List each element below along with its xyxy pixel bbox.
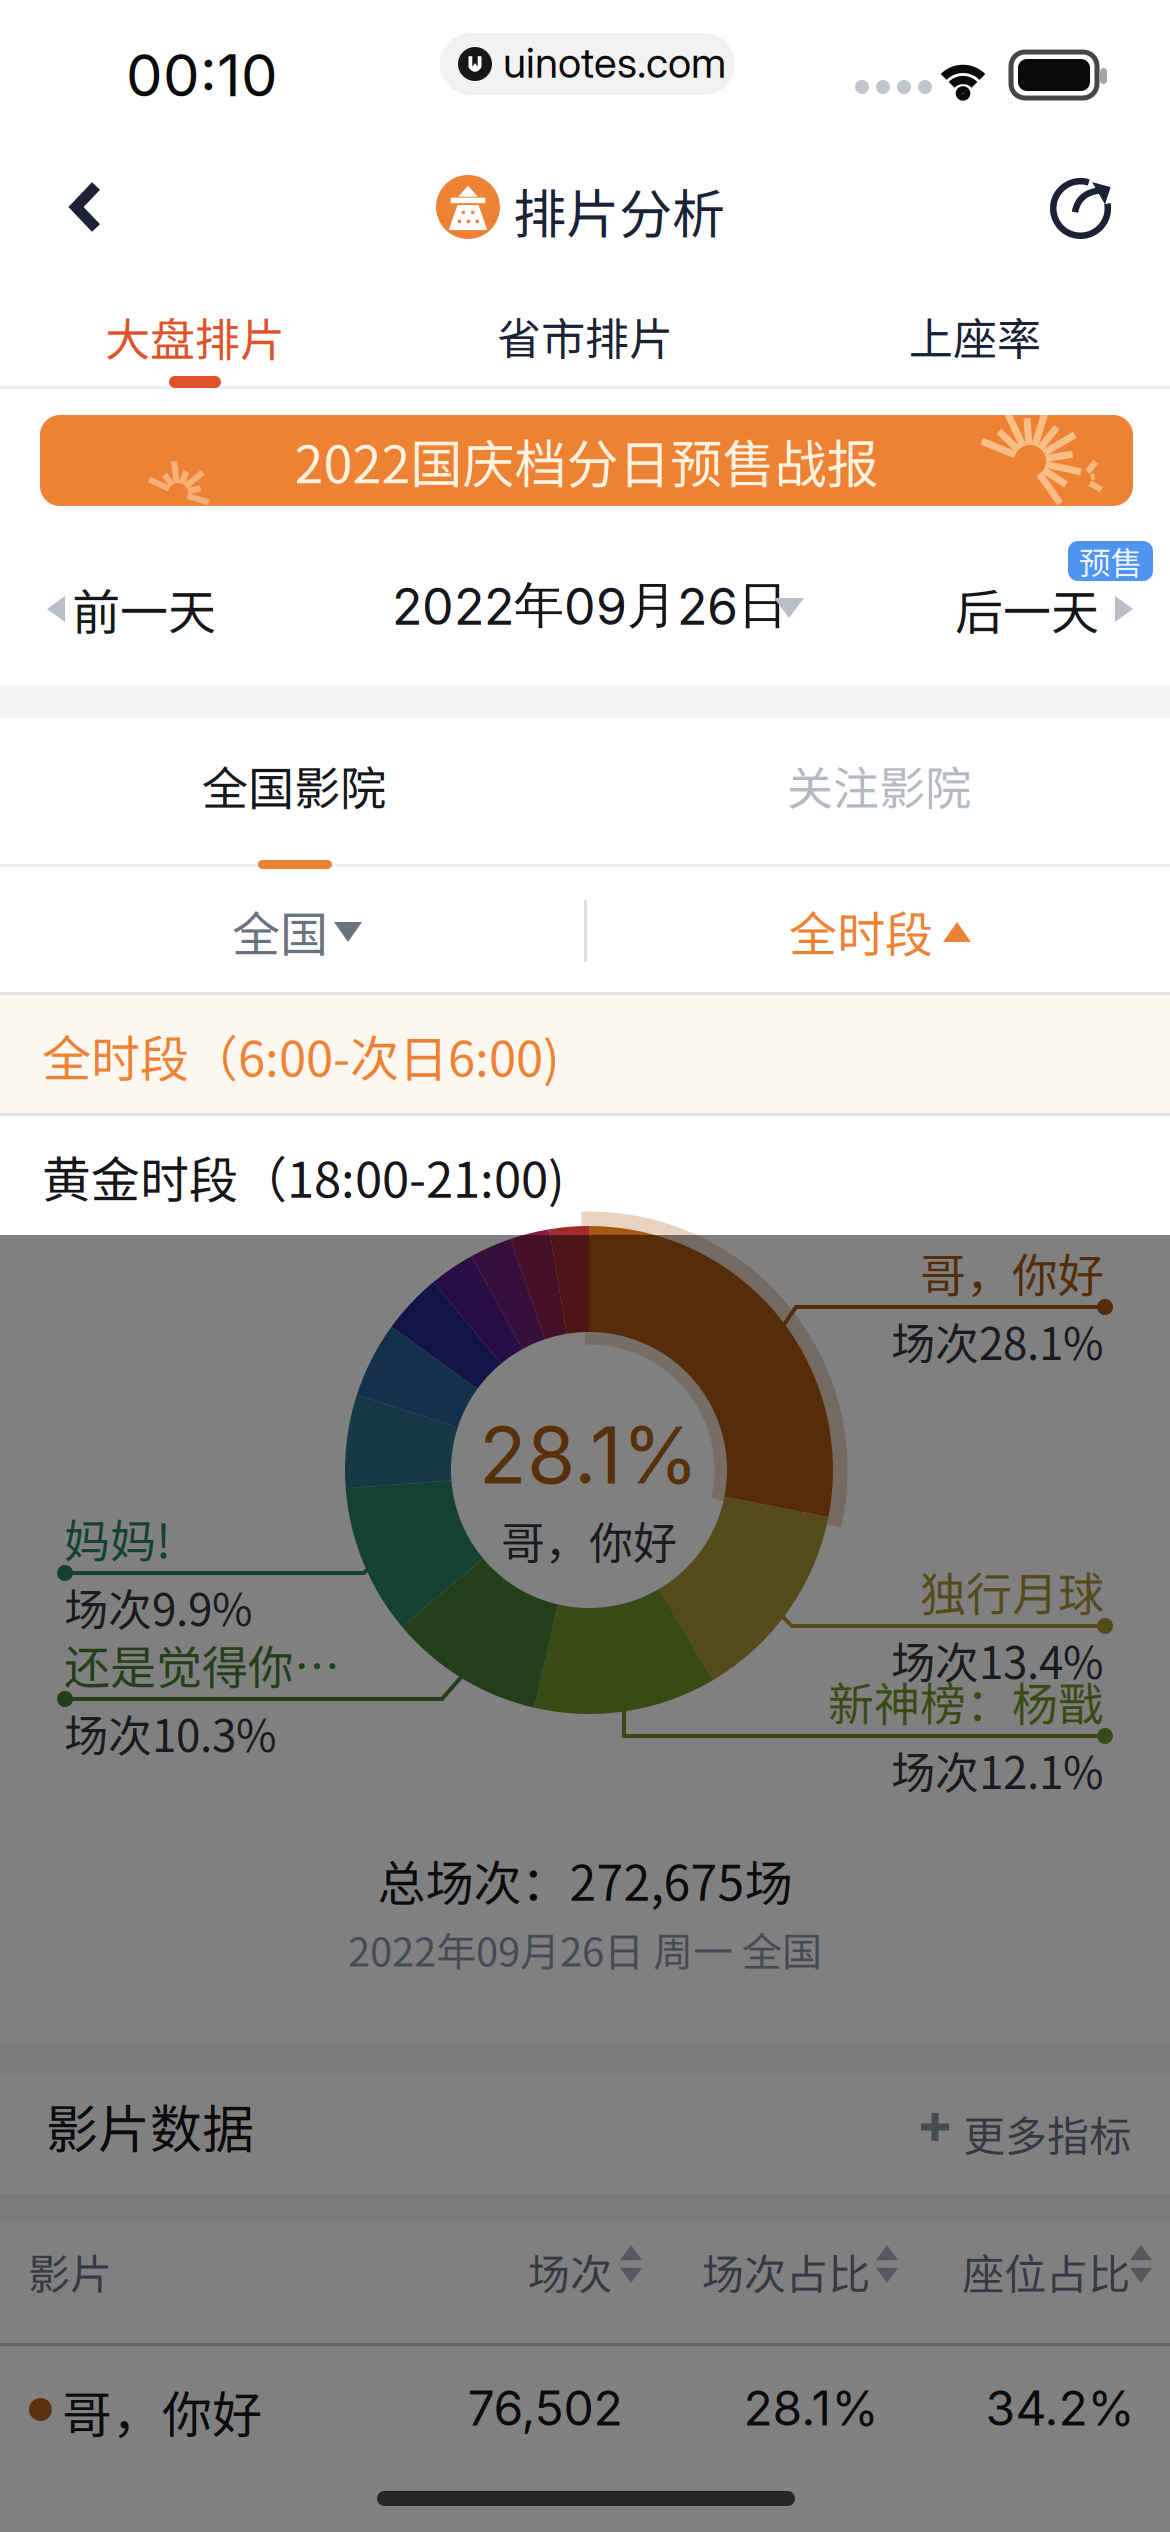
- staticText: 2022年09月26日 周一 全国: [348, 1920, 822, 1978]
- staticText: 还是觉得你…: [64, 1631, 340, 1698]
- staticText: 场次28.1%: [891, 1309, 1104, 1373]
- staticText: 00:10: [126, 40, 278, 110]
- staticText: 场次12.1%: [891, 1738, 1104, 1802]
- button[interactable]: 上座率: [780, 290, 1170, 386]
- staticText: 全时段: [789, 896, 933, 965]
- button[interactable]: 2022国庆档分日预售战报: [40, 415, 1133, 506]
- staticText: 哥，你好: [920, 1239, 1104, 1306]
- staticText: 上座率: [909, 304, 1041, 368]
- staticText: 座位占比: [962, 2241, 1130, 2302]
- staticText: 独行月球: [920, 1558, 1104, 1625]
- button[interactable]: 全国影院: [0, 718, 585, 864]
- staticText: 全时段（6:00-次日6:00): [42, 1020, 560, 1091]
- staticText: 预售: [1078, 538, 1142, 584]
- staticText: 28.1%: [479, 1408, 699, 1502]
- button[interactable]: 黄金时段（18:00-21:00): [0, 1116, 1170, 1236]
- button[interactable]: 关注影院: [585, 718, 1170, 864]
- staticText: 场次9.9%: [64, 1575, 253, 1639]
- staticText: 影片数据: [46, 2088, 254, 2163]
- staticText: 排片分析: [513, 172, 725, 249]
- staticText: 28.1%: [743, 2379, 878, 2437]
- button[interactable]: 全国: [0, 870, 585, 992]
- staticText: 场次: [528, 2241, 612, 2302]
- button[interactable]: 2022年09月26日: [370, 552, 830, 664]
- staticText: 黄金时段（18:00-21:00): [42, 1141, 565, 1212]
- button[interactable]: Share: [1012, 145, 1152, 269]
- staticText: 关注影院: [787, 752, 971, 819]
- staticText: 妈妈!: [64, 1505, 171, 1572]
- button[interactable]: 全时段: [585, 870, 1170, 992]
- staticText: uinotes.com: [503, 37, 726, 88]
- button[interactable]: 前一天: [10, 552, 280, 664]
- button[interactable]: Back: [24, 145, 154, 269]
- staticText: 76,502: [467, 2379, 622, 2437]
- staticText: 影片: [28, 2241, 112, 2302]
- button[interactable]: 哥，你好: [0, 1235, 1170, 1395]
- staticText: 34.2%: [985, 2379, 1134, 2437]
- staticText: 总场次：272,675场: [377, 1845, 792, 1914]
- staticText: 哥，你好: [62, 2375, 262, 2447]
- staticText: 省市排片: [497, 304, 673, 368]
- staticText: 更多指标: [963, 2103, 1131, 2164]
- staticText: 新神榜：杨戬: [828, 1668, 1104, 1735]
- staticText: 后一天: [955, 574, 1099, 643]
- staticText: 场次10.3%: [64, 1701, 277, 1765]
- staticText: 大盘排片: [105, 304, 285, 369]
- staticText: 2022国庆档分日预售战报: [294, 423, 878, 498]
- button[interactable]: 全时段（6:00-次日6:00): [0, 995, 1170, 1115]
- staticText: 全国影院: [202, 752, 386, 819]
- staticText: 全国: [232, 896, 328, 965]
- button[interactable]: 大盘排片: [0, 290, 390, 386]
- staticText: 前一天: [72, 574, 216, 643]
- staticText: 2022年09月26日: [392, 574, 788, 637]
- staticText: 场次13.4%: [891, 1628, 1104, 1692]
- button[interactable]: 更多指标: [905, 2103, 1130, 2183]
- staticText: 场次占比: [702, 2241, 870, 2302]
- button[interactable]: 省市排片: [390, 290, 780, 386]
- button[interactable]: 后一天: [920, 552, 1150, 664]
- staticText: 哥，你好: [501, 1508, 677, 1572]
